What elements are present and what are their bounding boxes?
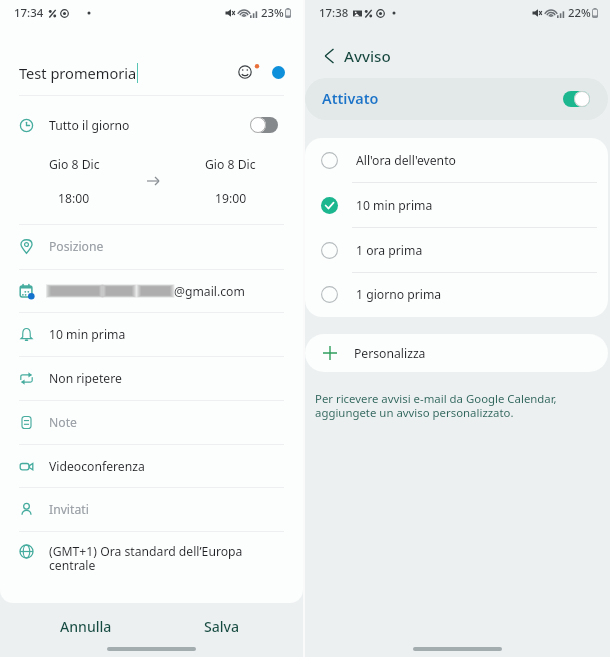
staticText: Per ricevere avvisi e-mail da Google Cal…: [315, 391, 557, 420]
button[interactable]: 1 giorno prima: [305, 272, 608, 317]
staticText: Posizione: [49, 238, 104, 255]
staticText: 19:00: [215, 190, 247, 207]
staticText: Test promemoria: [19, 63, 137, 83]
button[interactable]: 10 min prima: [0, 312, 303, 356]
button[interactable]: Videoconferenza: [0, 444, 303, 488]
button[interactable]: Salva: [172, 607, 272, 646]
button[interactable]: Indietro: [314, 41, 344, 71]
button[interactable]: Invitati: [0, 487, 303, 531]
staticText: 1 giorno prima: [356, 286, 442, 303]
staticText: 17:38: [319, 5, 349, 21]
staticText: Annulla: [60, 617, 112, 636]
staticText: Tutto il giorno: [49, 117, 130, 134]
staticText: Gio 8 Dic: [205, 156, 256, 173]
staticText: 18:00: [58, 190, 90, 207]
staticText: 1 ora prima: [356, 242, 423, 259]
button[interactable]: Annulla: [0, 607, 172, 646]
staticText: Gio 8 Dic: [49, 156, 100, 173]
button[interactable]: Colore: [272, 66, 285, 79]
staticText: 22%: [568, 5, 591, 21]
staticText: Attivato: [322, 89, 379, 109]
staticText: 10 min prima: [49, 326, 126, 343]
staticText: 10 min prima: [356, 197, 433, 214]
staticText: Avviso: [344, 46, 391, 67]
button[interactable]: 19:00: [158, 186, 303, 211]
button[interactable]: Gio 8 Dic: [0, 152, 148, 177]
button[interactable]: Posizione: [0, 224, 303, 268]
staticText: Non ripetere: [49, 370, 122, 387]
staticText: Invitati: [49, 501, 89, 518]
staticText: 17:34: [14, 5, 44, 21]
staticText: (GMT+1) Ora standard dell’Europa central…: [49, 543, 279, 574]
button[interactable]: 10 min prima: [305, 183, 608, 228]
staticText: All'ora dell'evento: [356, 152, 456, 169]
button[interactable]: Tutto il giorno: [0, 103, 303, 147]
staticText: Videoconferenza: [49, 458, 145, 475]
button[interactable]: @gmail.com: [0, 269, 303, 313]
button[interactable]: (GMT+1) Ora standard dell’Europa central…: [0, 543, 303, 574]
button[interactable]: Non ripetere: [0, 356, 303, 400]
staticText: Note: [49, 414, 77, 431]
staticText: @gmail.com: [174, 283, 245, 300]
staticText: 23%: [261, 5, 284, 21]
staticText: Salva: [204, 617, 240, 636]
button[interactable]: Emoji: [232, 59, 258, 85]
staticText: Personalizza: [354, 345, 426, 362]
button[interactable]: Attivato: [305, 78, 608, 120]
button[interactable]: Personalizza: [305, 334, 608, 372]
button[interactable]: Gio 8 Dic: [158, 152, 303, 177]
button[interactable]: Note: [0, 400, 303, 444]
button[interactable]: 1 ora prima: [305, 228, 608, 273]
button[interactable]: All'ora dell'evento: [305, 138, 608, 183]
button[interactable]: 18:00: [0, 186, 148, 211]
